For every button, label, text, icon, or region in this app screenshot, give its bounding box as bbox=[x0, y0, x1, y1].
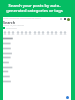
button[interactable]: Category bbox=[46, 31, 50, 35]
button[interactable]: Category bbox=[7, 31, 11, 35]
button[interactable]: Category bbox=[3, 31, 7, 35]
button[interactable]: Account bbox=[67, 18, 70, 21]
button[interactable]: Category bbox=[54, 31, 58, 35]
button[interactable]: Category bbox=[50, 31, 54, 35]
button[interactable]: Search bbox=[3, 20, 16, 25]
button[interactable]: Category bbox=[41, 31, 45, 35]
button[interactable]: Category bbox=[59, 31, 63, 35]
button[interactable] bbox=[3, 65, 17, 70]
button[interactable]: Category bbox=[28, 31, 32, 35]
button[interactable] bbox=[3, 55, 17, 60]
staticText: Search your posts by auto- generated cat… bbox=[0, 3, 69, 13]
button[interactable]: Compose bbox=[66, 96, 69, 99]
button[interactable] bbox=[3, 36, 17, 41]
button[interactable] bbox=[3, 60, 17, 65]
staticText: categories bbox=[6, 27, 17, 30]
staticText: About 18,300 results bbox=[3, 24, 25, 27]
button[interactable] bbox=[3, 79, 17, 84]
button[interactable]: Category bbox=[16, 31, 20, 35]
button[interactable] bbox=[3, 41, 17, 46]
button[interactable] bbox=[3, 74, 17, 79]
button[interactable] bbox=[3, 46, 17, 51]
button[interactable] bbox=[3, 69, 17, 74]
button[interactable]: Category bbox=[11, 31, 15, 35]
button[interactable]: Category bbox=[33, 31, 37, 35]
button[interactable]: Category bbox=[24, 31, 28, 35]
button[interactable] bbox=[3, 51, 17, 56]
button[interactable]: Category bbox=[63, 31, 67, 35]
button[interactable]: Category bbox=[37, 31, 41, 35]
button[interactable]: Category bbox=[20, 31, 24, 35]
staticText: https://example.com/search?q=posts bbox=[3, 17, 41, 20]
